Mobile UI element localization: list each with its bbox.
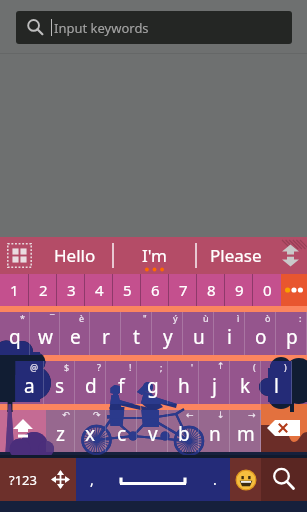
staticText: m [237,421,255,447]
staticText: Input keywords [54,19,149,37]
button[interactable]: Switch input method [45,458,76,501]
button[interactable]: Backspace [261,410,307,452]
button[interactable]: 8 [197,274,225,306]
button[interactable]: ; [137,361,168,404]
button[interactable]: è [60,312,90,355]
button[interactable]: Hello [38,237,112,274]
staticText: 8 [207,280,216,300]
staticText: 1 [10,280,19,300]
button[interactable]: ← [168,410,199,452]
button[interactable]: " [121,312,152,355]
button[interactable]: @ [14,361,44,404]
staticText: → [248,410,256,420]
staticText: : [299,312,302,324]
button[interactable]: ¯ [30,312,60,355]
staticText: ↑ [217,361,225,371]
staticText: p [286,324,298,350]
button[interactable]: 3 [57,274,85,306]
button[interactable]: 5 [113,274,141,306]
staticText: v [148,421,158,447]
button[interactable]: Input keywords [16,11,292,44]
button[interactable]: $ [44,361,75,404]
button[interactable]: ↷ [75,410,106,452]
button[interactable]: 6 [141,274,169,306]
button[interactable]: 2 [29,274,57,306]
button[interactable]: ?123 [0,458,45,501]
staticText: n [209,421,221,447]
button[interactable]: Emoji [230,458,261,501]
staticText: $ [64,361,70,373]
staticText: * [20,312,25,324]
staticText: ↶ [62,410,70,420]
staticText: ý [173,312,178,324]
staticText: g [147,373,159,399]
staticText: j [212,373,217,399]
staticText: ? [97,361,101,373]
button[interactable]: Shift [0,410,45,452]
button[interactable]: Keyboard themes [0,237,38,274]
button[interactable]: v [137,410,168,452]
button[interactable]: ' [168,361,199,404]
button[interactable]: ) [261,361,292,404]
staticText: c [117,421,127,447]
staticText: ' [191,361,194,373]
staticText: o [255,324,267,350]
staticText: u [193,324,205,350]
button[interactable]: → [230,410,261,452]
button[interactable]: 4 [85,274,113,306]
staticText: z [56,421,65,447]
button[interactable]: Space [107,458,199,501]
button[interactable]: ( [230,361,261,404]
staticText: a [24,373,35,399]
staticText: , [90,470,94,489]
staticText: k [240,373,251,399]
staticText: ì [237,312,240,324]
staticText: 2 [39,280,48,300]
button[interactable]: 7 [169,274,197,306]
staticText: d [85,373,97,399]
button[interactable]: Search [261,458,307,501]
staticText: l [274,373,279,399]
button[interactable]: . [199,458,230,501]
button[interactable]: ì [214,312,245,355]
button[interactable]: 0 [253,274,281,306]
staticText: t [133,324,140,350]
staticText: . [213,470,217,489]
staticText: 5 [123,280,132,300]
button[interactable]: 1 [0,274,29,306]
staticText: " [143,312,147,324]
button[interactable]: ý [152,312,183,355]
staticText: @ [30,361,39,373]
staticText: h [178,373,190,399]
button[interactable]: I'm [114,237,195,274]
button[interactable]: ↓ [199,410,230,452]
staticText: 0 [263,280,272,300]
staticText: Hello [54,244,96,267]
button[interactable]: , [76,458,107,501]
staticText: q [9,324,21,350]
button[interactable]: : [276,312,307,355]
staticText: ↷ [93,410,101,420]
button[interactable]: More symbols [281,274,307,306]
button[interactable]: 9 [225,274,253,306]
button[interactable]: * [0,312,30,355]
button[interactable]: Please [197,237,274,274]
button[interactable]: ù [183,312,214,355]
staticText: b [178,421,190,447]
button[interactable]: ? [75,361,106,404]
staticText: x [85,421,96,447]
button[interactable]: ò [245,312,276,355]
button[interactable]: ↑ [199,361,230,404]
staticText: ( [253,361,256,373]
button[interactable]: c [106,410,137,452]
button[interactable]: r [90,312,121,355]
staticText: ; [160,361,163,373]
button[interactable]: ! [106,361,137,404]
button[interactable]: ↶ [45,410,75,452]
staticText: 7 [179,280,188,300]
staticText: w [38,324,53,350]
staticText: ù [203,312,209,324]
button[interactable]: Expand suggestions [274,237,307,274]
staticText: 3 [67,280,76,300]
staticText: ¯ [50,312,55,324]
